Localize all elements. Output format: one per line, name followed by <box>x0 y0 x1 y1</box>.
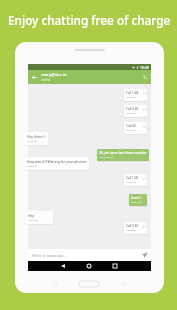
button[interactable]: Good ) <box>129 194 147 206</box>
staticText: Call 1:48 <box>126 91 139 95</box>
staticText: Hey there :) <box>27 134 46 139</box>
staticText: Enjoy chatting free of charge <box>8 12 171 28</box>
staticText: How was it?( Waiting for your photos) <box>27 159 87 164</box>
staticText: Call 0:56 <box>126 224 139 228</box>
button[interactable]: Call 0:46 <box>124 105 147 117</box>
button[interactable]: Ok just came back from vacation <box>97 149 149 161</box>
staticText: 10:02 PM <box>126 112 136 115</box>
button[interactable]: Call 0:56 <box>124 222 147 234</box>
button[interactable]: Call 1:48 <box>124 89 147 101</box>
staticText: Call 1:06 <box>126 176 139 180</box>
staticText: Ok just came back from vacation <box>99 151 147 155</box>
button[interactable]: How was it?( Waiting for your photos) <box>24 157 89 170</box>
button[interactable]: Back <box>58 261 68 271</box>
button[interactable]: Call 1:06 <box>124 174 147 186</box>
staticText: 10:01 PM <box>28 219 38 222</box>
button[interactable]: Hey there :) <box>24 132 48 145</box>
staticText: Hey <box>28 213 35 218</box>
staticText: Write a message... <box>32 253 138 258</box>
staticText: 10:02 <box>131 201 137 204</box>
staticText: 10:01 PM <box>99 156 109 159</box>
button[interactable]: Home <box>84 261 94 271</box>
button[interactable]: Call <box>138 70 151 84</box>
staticText: 10:08 <box>140 65 149 70</box>
staticText: Call 0:46 <box>126 107 139 111</box>
staticText: 10:01 PM <box>27 140 37 143</box>
staticText: 10:02 PM <box>126 96 136 99</box>
staticText: Good ) <box>131 196 141 200</box>
staticText: 10:01 PM <box>27 165 37 168</box>
button[interactable]: Send <box>138 249 151 261</box>
button[interactable]: Hey <box>25 211 53 224</box>
staticText: Call 40 <box>126 124 136 128</box>
button[interactable]: Back <box>28 70 41 84</box>
staticText: 10:02 PM <box>126 129 136 132</box>
staticText: mary@abc.in <box>41 72 67 78</box>
button[interactable]: Recents <box>110 261 120 271</box>
staticText: 10:02 PM <box>126 181 136 184</box>
staticText: online <box>41 78 51 82</box>
staticText: 10:02 PM <box>126 229 136 232</box>
button[interactable]: Call 40 <box>124 122 147 134</box>
